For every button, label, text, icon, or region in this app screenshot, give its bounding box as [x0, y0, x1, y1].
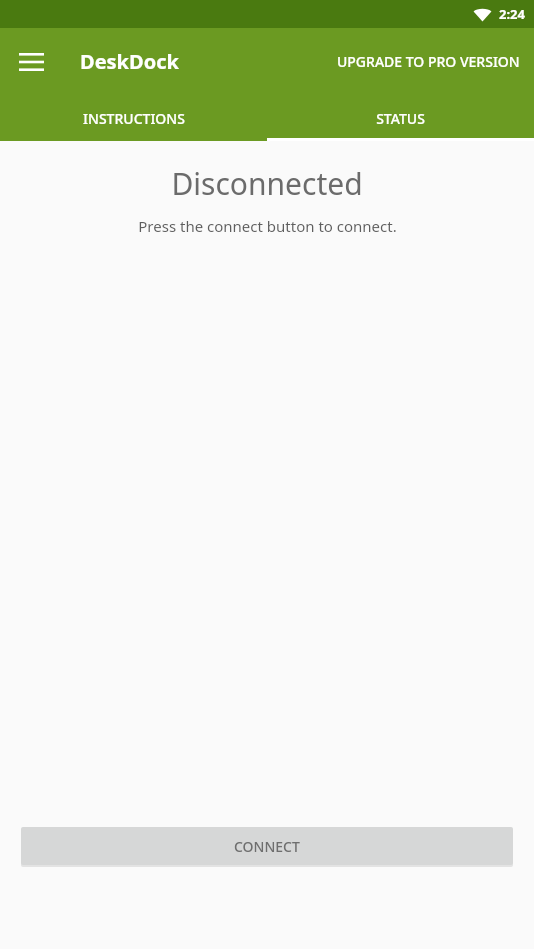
button[interactable]: STATUS	[267, 95, 534, 141]
staticText: Disconnected	[171, 163, 363, 204]
staticText: Press the connect button to connect.	[138, 216, 397, 236]
staticText: CONNECT	[234, 837, 300, 856]
button[interactable]: Open navigation menu	[8, 39, 54, 85]
staticText: UPGRADE TO PRO VERSION	[337, 52, 520, 71]
button[interactable]: UPGRADE TO PRO VERSION	[323, 36, 534, 87]
staticText: DeskDock	[80, 48, 179, 75]
staticText: 2:24	[499, 5, 525, 23]
staticText: INSTRUCTIONS	[83, 109, 185, 128]
button[interactable]: INSTRUCTIONS	[0, 95, 267, 141]
staticText: STATUS	[376, 109, 425, 128]
button[interactable]: CONNECT	[21, 827, 513, 865]
